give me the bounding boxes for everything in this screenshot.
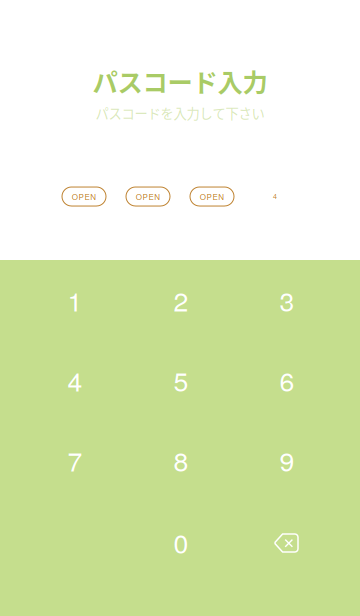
- staticText: OPEN: [72, 191, 96, 202]
- button[interactable]: OPEN: [126, 187, 170, 206]
- staticText: 0: [173, 523, 188, 561]
- staticText: 3: [279, 281, 294, 319]
- staticText: パスコード入力: [92, 63, 267, 99]
- staticText: 5: [173, 361, 188, 399]
- staticText: 1: [67, 281, 82, 319]
- button[interactable]: 1: [22, 260, 128, 340]
- button[interactable]: 3: [234, 260, 340, 340]
- button[interactable]: 9: [234, 420, 340, 500]
- button[interactable]: 2: [128, 260, 234, 340]
- button[interactable]: 8: [128, 420, 234, 500]
- button[interactable]: 5: [128, 340, 234, 420]
- staticText: 9: [279, 441, 294, 479]
- staticText: OPEN: [200, 191, 224, 202]
- staticText: 8: [173, 441, 188, 479]
- button[interactable]: 7: [22, 420, 128, 500]
- staticText: 6: [279, 361, 294, 399]
- staticText: 7: [67, 441, 82, 479]
- button[interactable]: Delete: [234, 502, 340, 582]
- button[interactable]: OPEN: [62, 187, 106, 206]
- button[interactable]: 6: [234, 340, 340, 420]
- staticText: 4: [273, 192, 277, 201]
- button[interactable]: 0: [128, 502, 234, 582]
- button[interactable]: OPEN: [190, 187, 234, 206]
- staticText: 2: [173, 281, 188, 319]
- staticText: パスコードを入力して下さい: [95, 103, 264, 123]
- staticText: 4: [67, 361, 82, 399]
- button[interactable]: 4: [22, 340, 128, 420]
- staticText: OPEN: [136, 191, 160, 202]
